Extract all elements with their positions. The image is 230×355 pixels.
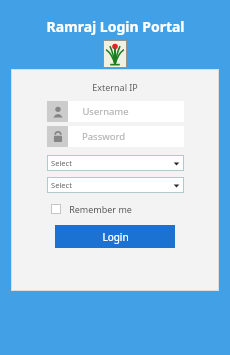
button[interactable]: Username [47,101,184,122]
button[interactable]: Login [55,225,175,248]
staticText: Remember me [69,203,132,215]
staticText: Ramraj Login Portal [46,17,185,36]
button[interactable]: Remember me [47,202,184,216]
button[interactable]: Select [47,155,184,171]
staticText: Username [82,105,129,118]
staticText: Password [82,130,125,143]
staticText: External IP [92,81,138,93]
staticText: Select [51,158,72,168]
button[interactable]: Password [47,126,184,147]
other: Ramraj logo [103,40,127,68]
staticText: Select [51,180,72,190]
button[interactable]: Select [47,177,184,193]
staticText: Login [102,230,129,244]
